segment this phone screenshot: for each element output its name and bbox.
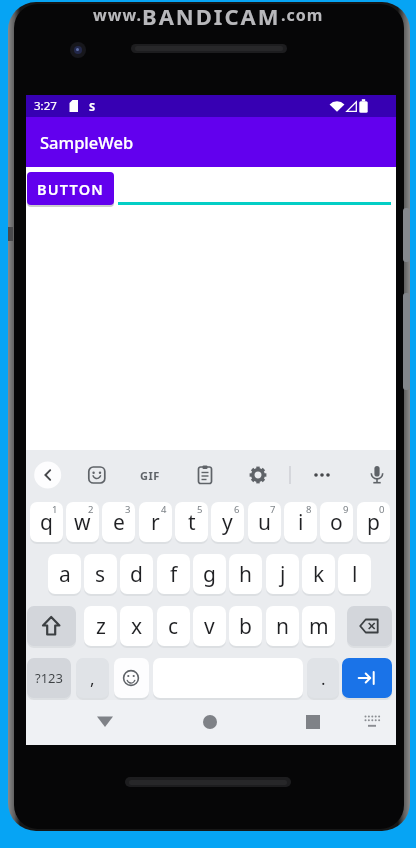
- staticText: www.: [93, 4, 142, 26]
- staticText: 3:27: [34, 98, 57, 114]
- staticText: ?123: [35, 669, 63, 687]
- button[interactable]: [80, 461, 114, 489]
- staticText: 0: [379, 503, 385, 516]
- button[interactable]: t: [175, 502, 208, 542]
- staticText: v: [204, 612, 215, 641]
- button[interactable]: e: [102, 502, 135, 542]
- staticText: o: [330, 508, 343, 537]
- staticText: 3: [125, 503, 131, 516]
- staticText: z: [96, 612, 106, 641]
- button[interactable]: z: [84, 606, 117, 646]
- button[interactable]: [360, 461, 394, 489]
- button[interactable]: [293, 702, 333, 742]
- button[interactable]: q: [30, 502, 63, 542]
- button[interactable]: [114, 658, 149, 698]
- button[interactable]: [118, 172, 391, 204]
- staticText: h: [239, 560, 252, 589]
- button[interactable]: [85, 702, 125, 742]
- button[interactable]: BUTTON: [27, 172, 114, 205]
- button[interactable]: i: [284, 502, 317, 542]
- staticText: s: [95, 560, 106, 589]
- staticText: BUTTON: [37, 179, 104, 199]
- staticText: SampleWeb: [40, 131, 134, 153]
- staticText: 1: [52, 503, 58, 516]
- staticText: 6: [234, 503, 240, 516]
- button[interactable]: [27, 606, 76, 646]
- staticText: u: [258, 508, 271, 537]
- staticText: t: [188, 508, 196, 537]
- staticText: 9: [343, 503, 349, 516]
- staticText: ,: [90, 667, 95, 690]
- button[interactable]: m: [302, 606, 335, 646]
- staticText: d: [130, 560, 143, 589]
- staticText: e: [113, 508, 125, 537]
- button[interactable]: s: [84, 554, 117, 594]
- staticText: r: [151, 508, 160, 537]
- staticText: b: [239, 612, 252, 641]
- button[interactable]: y: [211, 502, 244, 542]
- button[interactable]: [352, 702, 392, 742]
- staticText: w: [74, 508, 91, 537]
- button[interactable]: b: [229, 606, 262, 646]
- button[interactable]: g: [193, 554, 226, 594]
- button[interactable]: h: [229, 554, 262, 594]
- staticText: y: [222, 508, 233, 537]
- button[interactable]: w: [66, 502, 99, 542]
- button[interactable]: p: [357, 502, 390, 542]
- button[interactable]: [188, 461, 222, 489]
- button[interactable]: [347, 606, 392, 646]
- staticText: .: [321, 667, 326, 690]
- staticText: n: [276, 612, 289, 641]
- button[interactable]: x: [120, 606, 153, 646]
- staticText: 7: [270, 503, 276, 516]
- button[interactable]: v: [193, 606, 226, 646]
- staticText: BANDICAM: [142, 1, 281, 29]
- button[interactable]: k: [302, 554, 335, 594]
- staticText: S: [89, 99, 96, 114]
- staticText: i: [298, 508, 304, 537]
- button[interactable]: ,: [76, 658, 109, 698]
- button[interactable]: r: [139, 502, 172, 542]
- button[interactable]: [305, 461, 339, 489]
- button[interactable]: c: [157, 606, 190, 646]
- staticText: k: [313, 560, 325, 589]
- button[interactable]: f: [157, 554, 190, 594]
- button[interactable]: [241, 461, 275, 489]
- staticText: GIF: [140, 468, 160, 483]
- staticText: a: [59, 560, 71, 589]
- staticText: 5: [197, 503, 203, 516]
- staticText: .com: [281, 4, 324, 26]
- staticText: p: [367, 508, 380, 537]
- button[interactable]: u: [248, 502, 281, 542]
- staticText: g: [203, 560, 216, 589]
- staticText: q: [40, 508, 53, 537]
- staticText: f: [170, 560, 178, 589]
- button[interactable]: [133, 461, 167, 489]
- staticText: c: [168, 612, 179, 641]
- button[interactable]: [342, 658, 392, 698]
- button[interactable]: [190, 702, 230, 742]
- button[interactable]: o: [320, 502, 353, 542]
- button[interactable]: [31, 461, 65, 489]
- staticText: m: [309, 612, 329, 641]
- staticText: 4: [161, 503, 167, 516]
- button[interactable]: .: [307, 658, 339, 698]
- button[interactable]: j: [266, 554, 299, 594]
- button[interactable]: ?123: [27, 658, 71, 698]
- staticText: x: [131, 612, 143, 641]
- staticText: l: [352, 560, 358, 589]
- button[interactable]: d: [120, 554, 153, 594]
- button[interactable]: n: [266, 606, 299, 646]
- button[interactable]: l: [338, 554, 371, 594]
- staticText: 2: [88, 503, 94, 516]
- staticText: 8: [306, 503, 312, 516]
- button[interactable]: a: [48, 554, 81, 594]
- staticText: j: [280, 560, 286, 589]
